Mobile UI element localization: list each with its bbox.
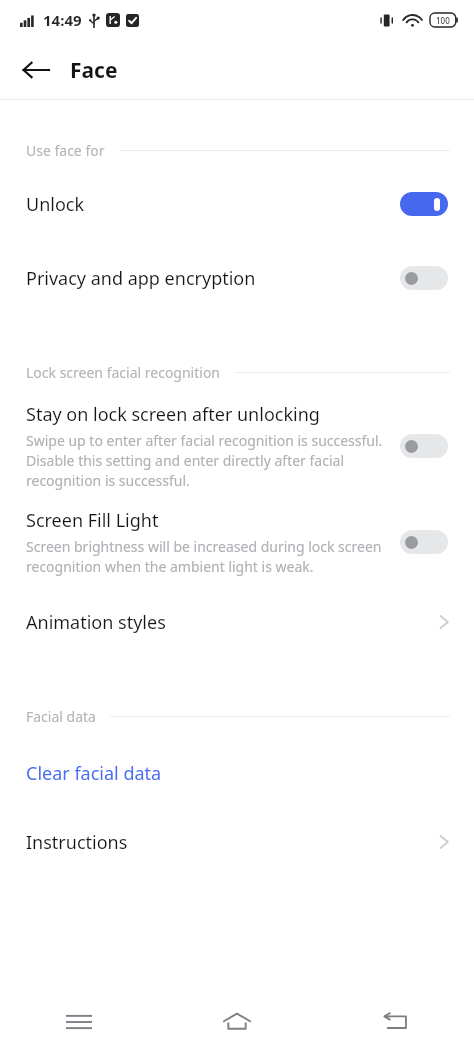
staticText: Use face for xyxy=(26,141,105,160)
staticText: Face xyxy=(70,56,118,85)
button[interactable]: Stay on lock screen after unlocking xyxy=(0,400,474,492)
button[interactable]: Privacy and app encryption xyxy=(0,256,474,300)
staticText: 100 xyxy=(436,15,450,26)
staticText: Instructions xyxy=(26,830,436,855)
staticText: Clear facial data xyxy=(26,761,162,786)
button[interactable]: Screen Fill Light xyxy=(0,506,474,578)
staticText: Facial data xyxy=(26,707,96,726)
staticText: Privacy and app encryption xyxy=(26,266,400,291)
staticText: Animation styles xyxy=(26,610,436,635)
button[interactable]: Animation styles xyxy=(0,600,474,644)
button[interactable]: Clear facial data xyxy=(0,752,474,794)
button[interactable]: Back xyxy=(12,46,60,94)
staticText: Unlock xyxy=(26,192,400,217)
staticText: Screen brightness will be increased duri… xyxy=(26,537,386,576)
button[interactable]: Instructions xyxy=(0,820,474,864)
button[interactable]: Off xyxy=(400,434,448,458)
button[interactable]: Unlock xyxy=(0,182,474,226)
button[interactable]: On xyxy=(400,192,448,216)
button[interactable]: Off xyxy=(400,266,448,290)
staticText: Screen Fill Light xyxy=(26,508,159,533)
button[interactable]: Recent apps xyxy=(0,990,158,1053)
button[interactable]: Off xyxy=(400,530,448,554)
button[interactable]: Back xyxy=(316,990,474,1053)
staticText: 14:49 xyxy=(43,10,82,30)
staticText: Stay on lock screen after unlocking xyxy=(26,402,320,427)
staticText: Lock screen facial recognition xyxy=(26,363,221,382)
button[interactable]: Home xyxy=(158,990,316,1053)
staticText: Swipe up to enter after facial recogniti… xyxy=(26,431,386,490)
